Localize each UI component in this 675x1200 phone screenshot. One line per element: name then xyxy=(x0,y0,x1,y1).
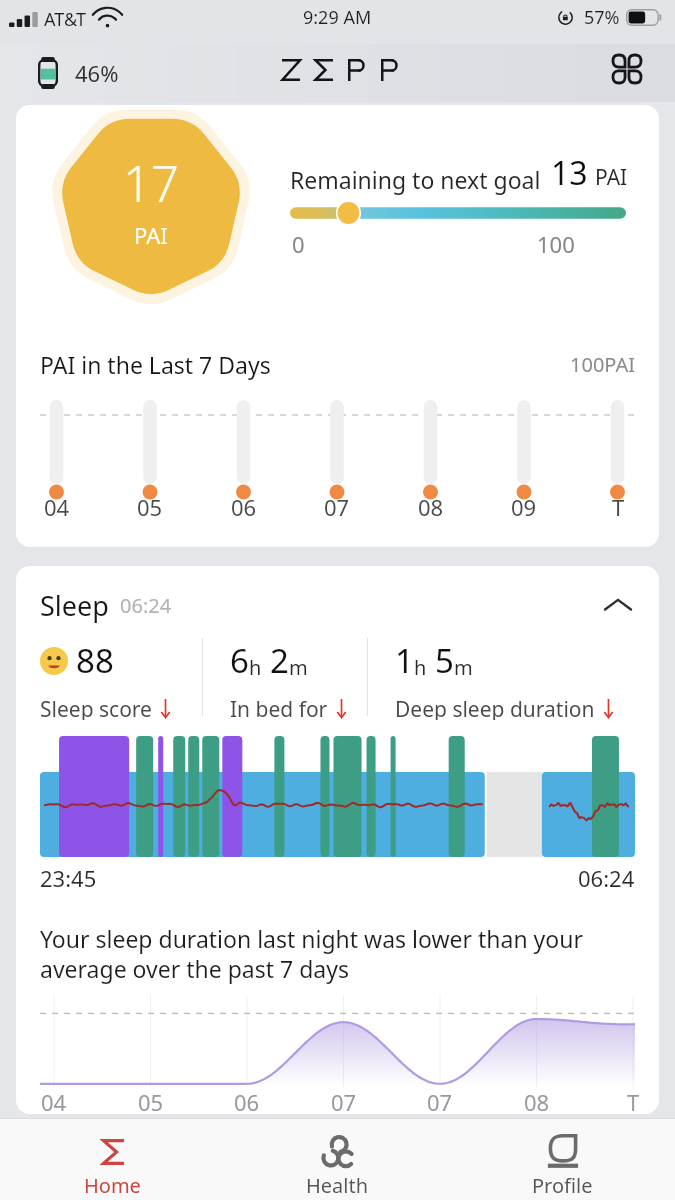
staticText: In bed for xyxy=(230,695,328,720)
button[interactable]: Profile xyxy=(450,1119,675,1200)
button[interactable]: Health xyxy=(225,1119,450,1200)
button[interactable]: 17 xyxy=(16,105,659,547)
staticText: 09 xyxy=(511,492,537,518)
staticText: 100 xyxy=(537,229,575,259)
staticText: 46% xyxy=(75,58,119,88)
staticText: T xyxy=(627,1087,640,1113)
staticText: 04 xyxy=(41,1087,67,1113)
button[interactable]: Home xyxy=(0,1119,225,1200)
button[interactable]: Apps xyxy=(607,49,647,89)
staticText: Profile xyxy=(532,1172,593,1199)
staticText: PAI xyxy=(595,163,628,192)
staticText: AT&T xyxy=(44,7,86,32)
staticText: PAI xyxy=(134,220,168,250)
staticText: 88 xyxy=(76,638,114,683)
staticText: 13 xyxy=(551,151,588,195)
staticText: 5 xyxy=(435,638,454,683)
staticText: Your sleep duration last night was lower… xyxy=(40,923,583,985)
staticText: 1 xyxy=(395,638,414,683)
staticText: Sleep score xyxy=(40,695,152,720)
staticText: 100PAI xyxy=(570,351,635,378)
staticText: m xyxy=(289,654,308,681)
button[interactable]: Sleep xyxy=(16,566,659,1114)
staticText: 57% xyxy=(584,5,620,30)
staticText: PAI in the Last 7 Days xyxy=(40,349,271,380)
staticText: Health xyxy=(306,1172,369,1199)
staticText: 04 xyxy=(44,492,70,518)
staticText: 6 xyxy=(230,638,249,683)
staticText: 05 xyxy=(138,1087,164,1113)
staticText: 08 xyxy=(524,1087,550,1113)
staticText: 08 xyxy=(418,492,444,518)
staticText: 05 xyxy=(137,492,163,518)
staticText: m xyxy=(454,654,473,681)
staticText: 07 xyxy=(331,1087,357,1113)
button[interactable]: Collapse xyxy=(601,588,635,622)
staticText: 17 xyxy=(123,150,179,217)
staticText: 9:29 AM xyxy=(303,5,372,30)
staticText: 2 xyxy=(270,638,289,683)
staticText: 07 xyxy=(324,492,350,518)
staticText: 23:45 xyxy=(40,863,97,893)
staticText: Deep sleep duration xyxy=(395,695,595,720)
staticText: Sleep xyxy=(40,587,109,624)
staticText: 07 xyxy=(427,1087,453,1113)
staticText: 06 xyxy=(231,492,257,518)
staticText: 06 xyxy=(234,1087,260,1113)
staticText: T xyxy=(612,492,625,518)
staticText: 06:24 xyxy=(578,863,635,893)
staticText: h xyxy=(414,654,427,681)
staticText: h xyxy=(249,654,262,681)
staticText: Home xyxy=(84,1172,141,1199)
staticText: 06:24 xyxy=(120,592,172,619)
staticText: Remaining to next goal xyxy=(290,164,541,195)
staticText: 0 xyxy=(292,229,305,259)
